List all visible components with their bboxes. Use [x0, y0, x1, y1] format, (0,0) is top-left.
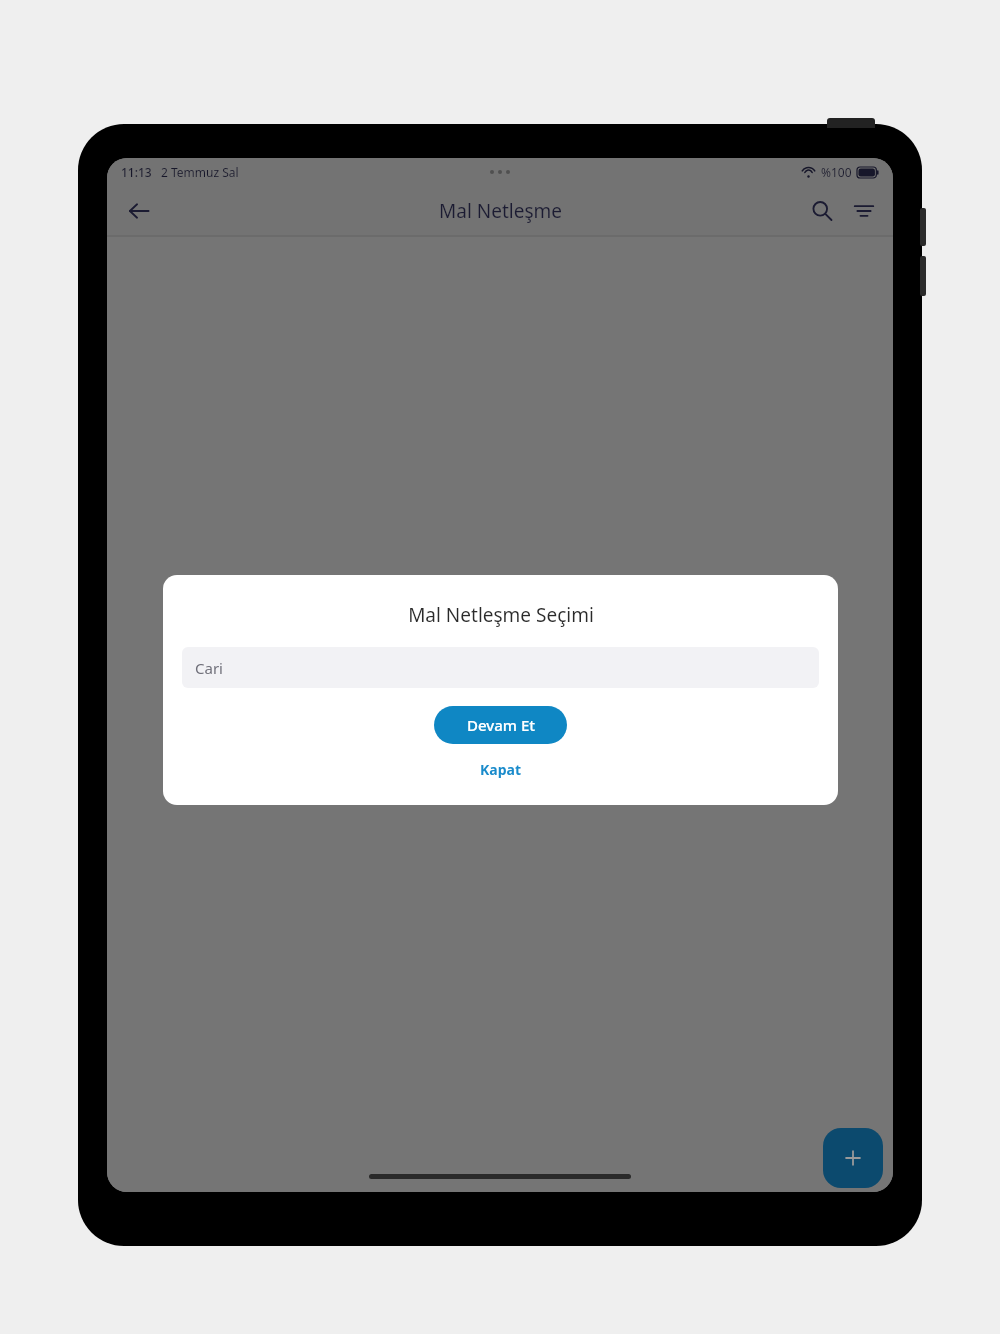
button[interactable]: Cari [182, 647, 819, 688]
button[interactable]: Search [801, 190, 843, 232]
staticText: %100 [821, 164, 852, 180]
staticText: Kapat [480, 760, 521, 779]
staticText: Devam Et [467, 715, 535, 735]
staticText: 11:13 [121, 164, 152, 180]
button[interactable]: Back [117, 189, 161, 233]
staticText: 2 Temmuz Sal [161, 164, 239, 180]
button[interactable]: Filter [843, 190, 885, 232]
button[interactable]: Add [823, 1128, 883, 1188]
staticText: Mal Netleşme [439, 198, 562, 224]
button[interactable]: Devam Et [434, 706, 567, 744]
staticText: Mal Netleşme Seçimi [408, 602, 594, 628]
button[interactable]: Kapat [466, 754, 535, 785]
staticText: Cari [195, 658, 223, 678]
